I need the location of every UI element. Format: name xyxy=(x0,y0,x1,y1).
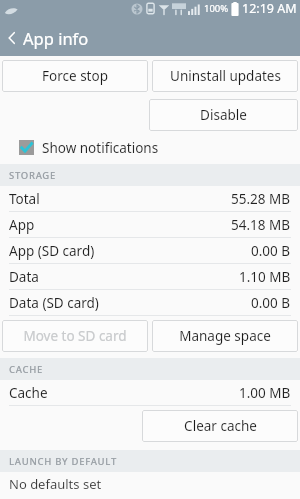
staticText: No defaults set xyxy=(9,475,102,493)
staticText: 100% xyxy=(204,2,229,15)
button[interactable]: Force stop xyxy=(2,60,148,92)
button[interactable]: Show notifications xyxy=(0,131,300,164)
button[interactable]: Uninstall updates xyxy=(152,60,298,92)
staticText: Uninstall updates xyxy=(170,67,281,85)
staticText: 1.10 MB xyxy=(239,268,291,286)
staticText: App (SD card) xyxy=(9,242,95,260)
staticText: App xyxy=(9,216,35,234)
staticText: Data (SD card) xyxy=(9,294,99,312)
staticText: STORAGE xyxy=(9,169,56,182)
staticText: Total xyxy=(9,190,40,208)
staticText: Move to SD card xyxy=(23,327,127,345)
staticText: 1.00 MB xyxy=(239,384,291,402)
button[interactable]: Clear cache xyxy=(142,410,298,442)
staticText: App info xyxy=(23,27,89,49)
staticText: 54.18 MB xyxy=(231,216,291,234)
button[interactable]: Manage space xyxy=(152,320,298,352)
button: Move to SD card xyxy=(2,320,148,352)
button[interactable]: Back xyxy=(0,19,23,56)
staticText: Force stop xyxy=(42,67,108,85)
staticText: Clear cache xyxy=(184,417,257,435)
staticText: Data xyxy=(9,268,39,286)
staticText: 12:19 AM xyxy=(242,0,297,17)
staticText: 0.00 B xyxy=(251,294,291,312)
staticText: LAUNCH BY DEFAULT xyxy=(9,455,117,468)
staticText: Cache xyxy=(9,384,48,402)
staticText: Manage space xyxy=(179,327,271,345)
staticText: 55.28 MB xyxy=(231,190,291,208)
staticText: Show notifications xyxy=(42,139,159,157)
button[interactable]: Disable xyxy=(149,99,298,131)
staticText: 0.00 B xyxy=(251,242,291,260)
staticText: CACHE xyxy=(9,363,43,376)
staticText: Disable xyxy=(200,106,247,124)
